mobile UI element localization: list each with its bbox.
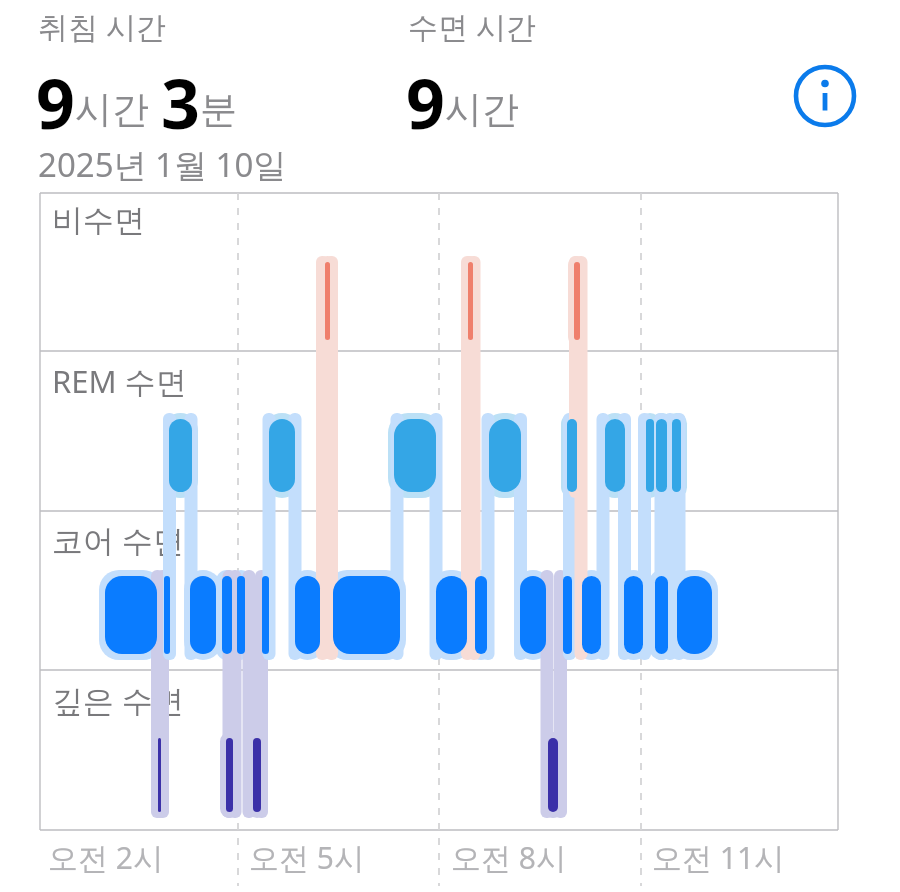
button[interactable]: 정보	[796, 67, 854, 125]
